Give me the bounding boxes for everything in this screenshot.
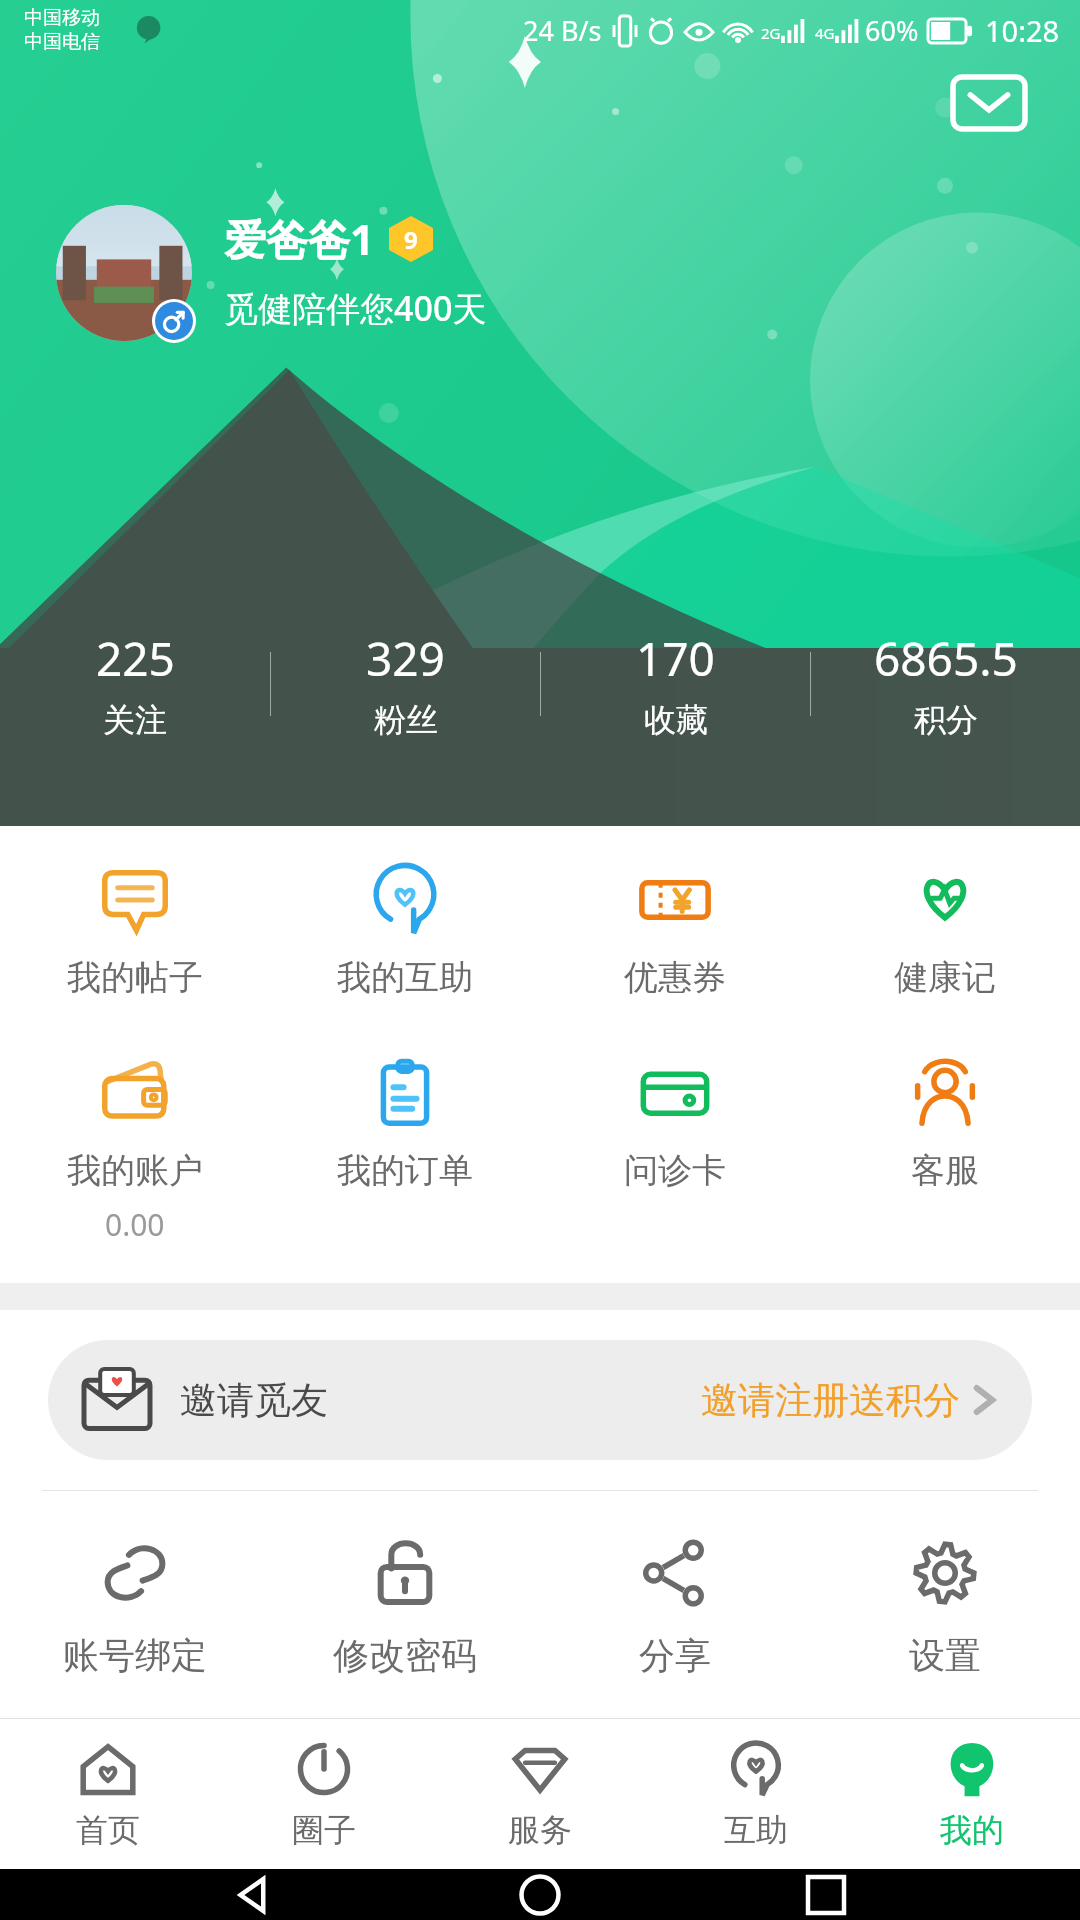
button[interactable]: 我的互助 bbox=[270, 860, 540, 1003]
button[interactable]: Home bbox=[508, 1869, 572, 1920]
staticText: 账号绑定 bbox=[63, 1633, 207, 1678]
button[interactable]: 分享 bbox=[540, 1535, 810, 1678]
staticText: 收藏 bbox=[644, 700, 708, 740]
button[interactable]: 170 bbox=[541, 627, 810, 740]
button[interactable]: 客服 bbox=[810, 1053, 1080, 1196]
staticText: 329 bbox=[366, 627, 445, 690]
staticText: 优惠券 bbox=[624, 956, 726, 999]
staticText: 我的订单 bbox=[337, 1149, 473, 1192]
staticText: 觅健陪伴您400天 bbox=[224, 285, 487, 331]
button[interactable]: 我的帖子 bbox=[0, 860, 270, 1003]
staticText: 10:28 bbox=[985, 11, 1060, 50]
staticText: 我的帖子 bbox=[67, 956, 203, 999]
button[interactable]: 设置 bbox=[810, 1535, 1080, 1678]
staticText: 圈子 bbox=[292, 1810, 356, 1850]
button[interactable]: 优惠券 bbox=[540, 860, 810, 1003]
staticText: 我的账户 bbox=[67, 1149, 203, 1192]
staticText: 设置 bbox=[909, 1633, 981, 1678]
staticText: 4G bbox=[815, 23, 835, 43]
staticText: 分享 bbox=[639, 1633, 711, 1678]
staticText: 我的 bbox=[940, 1810, 1004, 1850]
staticText: 爱爸爸1 bbox=[224, 210, 375, 267]
staticText: 0.00 bbox=[105, 1204, 165, 1245]
button[interactable]: 互助 bbox=[648, 1719, 864, 1869]
button[interactable]: Back bbox=[222, 1869, 286, 1920]
staticText: 服务 bbox=[508, 1810, 572, 1850]
button[interactable]: 圈子 bbox=[216, 1719, 432, 1869]
staticText: 修改密码 bbox=[333, 1633, 477, 1678]
staticText: 邀请注册送积分 bbox=[701, 1377, 960, 1424]
staticText: 2G bbox=[761, 23, 781, 43]
staticText: 225 bbox=[96, 627, 175, 690]
button[interactable]: 问诊卡 bbox=[540, 1053, 810, 1196]
staticText: 关注 bbox=[103, 700, 167, 740]
staticText: 24 B/s bbox=[523, 12, 602, 49]
button[interactable]: 329 bbox=[271, 627, 540, 740]
staticText: 粉丝 bbox=[374, 700, 438, 740]
staticText: 6865.5 bbox=[874, 627, 1018, 690]
staticText: 中国电信 bbox=[24, 30, 100, 54]
button[interactable]: 首页 bbox=[0, 1719, 216, 1869]
button[interactable]: 账号绑定 bbox=[0, 1535, 270, 1678]
staticText: 积分 bbox=[914, 700, 978, 740]
staticText: 邀请觅友 bbox=[180, 1377, 328, 1424]
button[interactable]: 6865.5 bbox=[811, 627, 1080, 740]
staticText: 首页 bbox=[76, 1810, 140, 1850]
button[interactable]: 我的订单 bbox=[270, 1053, 540, 1196]
staticText: 互助 bbox=[724, 1810, 788, 1850]
staticText: 9 bbox=[404, 223, 418, 256]
staticText: 60% bbox=[865, 12, 919, 49]
staticText: 健康记 bbox=[894, 956, 996, 999]
staticText: 170 bbox=[636, 627, 715, 690]
button[interactable]: 修改密码 bbox=[270, 1535, 540, 1678]
staticText: 我的互助 bbox=[337, 956, 473, 999]
button[interactable]: 我的账户 bbox=[0, 1053, 270, 1249]
button[interactable]: 服务 bbox=[432, 1719, 648, 1869]
button[interactable]: 我的 bbox=[864, 1719, 1080, 1869]
button[interactable]: Recents bbox=[794, 1869, 858, 1920]
staticText: 中国移动 bbox=[24, 6, 100, 30]
button[interactable]: 邀请觅友 bbox=[48, 1340, 1032, 1460]
staticText: 客服 bbox=[911, 1149, 979, 1192]
button[interactable]: Messages bbox=[950, 74, 1028, 132]
staticText: 问诊卡 bbox=[624, 1149, 726, 1192]
button[interactable]: 健康记 bbox=[810, 860, 1080, 1003]
button[interactable]: 225 bbox=[0, 627, 270, 740]
